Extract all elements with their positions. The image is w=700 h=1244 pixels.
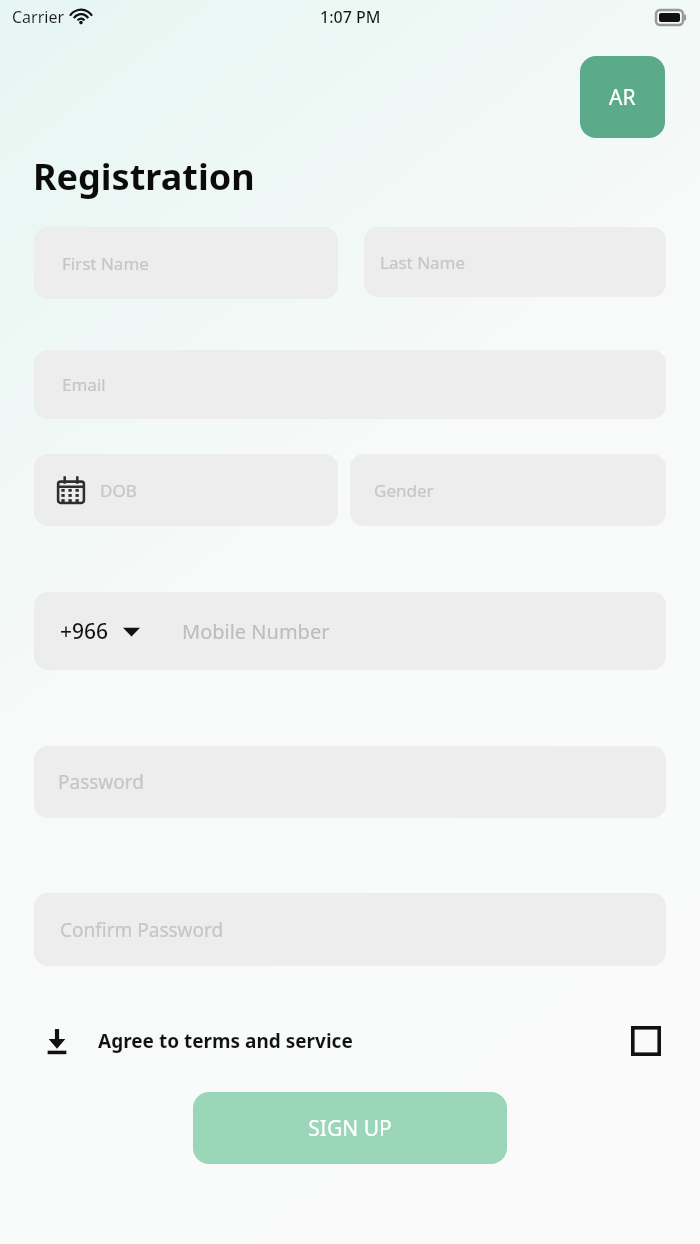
button[interactable]: Password bbox=[34, 746, 666, 818]
staticText: Carrier bbox=[12, 6, 65, 28]
staticText: 1:07 PM bbox=[320, 6, 381, 28]
button[interactable]: First Name bbox=[34, 227, 338, 299]
staticText: Password bbox=[58, 769, 144, 795]
button[interactable]: Profile AR bbox=[580, 56, 665, 138]
staticText: Confirm Password bbox=[60, 917, 224, 943]
staticText: Gender bbox=[374, 479, 434, 502]
staticText: Registration bbox=[33, 152, 255, 201]
button[interactable]: Gender bbox=[350, 454, 666, 526]
button[interactable]: SIGN UP bbox=[193, 1092, 507, 1164]
staticText: Agree to terms and service bbox=[98, 1028, 353, 1054]
button[interactable]: Confirm Password bbox=[34, 893, 666, 966]
staticText: Email bbox=[62, 373, 106, 396]
button[interactable]: Last Name bbox=[364, 227, 666, 297]
staticText: Mobile Number bbox=[182, 618, 330, 645]
staticText: SIGN UP bbox=[308, 1114, 392, 1143]
button[interactable]: +966 bbox=[34, 592, 666, 670]
staticText: First Name bbox=[62, 252, 149, 275]
button[interactable]: Agree checkbox bbox=[628, 1023, 664, 1059]
staticText: +966 bbox=[60, 617, 109, 646]
staticText: DOB bbox=[100, 479, 137, 502]
button[interactable]: DOB bbox=[34, 454, 338, 526]
staticText: AR bbox=[609, 83, 636, 112]
button[interactable]: Agree to terms and service bbox=[44, 1018, 664, 1064]
staticText: Last Name bbox=[380, 251, 466, 274]
